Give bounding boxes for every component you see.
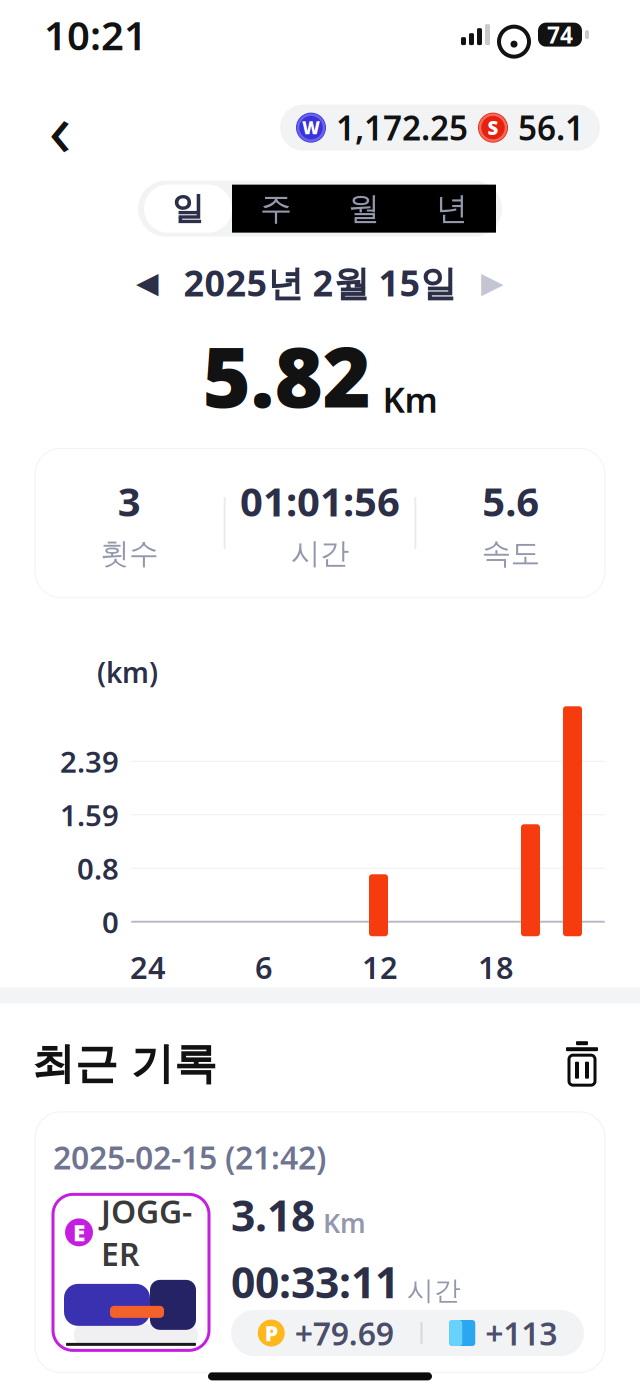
staticText: 2025년 2월 15일 bbox=[183, 259, 456, 306]
staticText: 속도 bbox=[482, 535, 540, 571]
staticText: E bbox=[73, 1217, 85, 1247]
staticText: 0.8 bbox=[77, 849, 119, 888]
button[interactable]: 2025-02-15 (21:42) bbox=[35, 1112, 605, 1372]
staticText: Km bbox=[323, 1205, 366, 1240]
staticText: (km) bbox=[97, 654, 158, 691]
staticText: 주 bbox=[260, 189, 292, 228]
staticText: 12 bbox=[362, 947, 398, 987]
button[interactable]: Wallet balance bbox=[280, 105, 600, 151]
staticText: 6 bbox=[255, 947, 273, 987]
button[interactable]: Back bbox=[32, 100, 88, 156]
staticText: ▶ bbox=[481, 266, 504, 299]
staticText: 일 bbox=[172, 189, 204, 228]
staticText: 3 bbox=[118, 474, 141, 527]
button[interactable]: 주 bbox=[232, 185, 320, 233]
staticText: 24 bbox=[130, 947, 166, 987]
staticText: 1.59 bbox=[60, 795, 119, 834]
staticText: 00:33:11 bbox=[231, 1253, 399, 1310]
staticText: 시간 bbox=[291, 535, 349, 571]
staticText: 월 bbox=[348, 189, 380, 228]
staticText: 3.18 bbox=[231, 1187, 315, 1243]
button[interactable]: Previous day bbox=[121, 259, 173, 307]
staticText: 횟수 bbox=[100, 535, 158, 571]
staticText: 2025-02-15 (21:42) bbox=[53, 1136, 326, 1178]
staticText: JOGGER bbox=[101, 1190, 192, 1275]
staticText: 10:21 bbox=[44, 8, 147, 61]
staticText: 74 bbox=[547, 20, 573, 50]
staticText: ‹ bbox=[48, 78, 71, 177]
staticText: 2.39 bbox=[60, 742, 119, 781]
staticText: P bbox=[265, 1319, 278, 1347]
staticText: 5.6 bbox=[482, 474, 539, 527]
staticText: +113 bbox=[485, 1312, 557, 1354]
staticText: W bbox=[302, 116, 320, 139]
button[interactable]: Next day bbox=[466, 259, 518, 307]
button[interactable]: 월 bbox=[320, 185, 408, 233]
staticText: +79.69 bbox=[295, 1312, 394, 1354]
staticText: 56.1 bbox=[518, 105, 584, 150]
staticText: 5.82 bbox=[202, 321, 370, 430]
button[interactable]: Delete records bbox=[556, 1038, 608, 1090]
staticText: 1,172.25 bbox=[336, 105, 468, 150]
staticText: ◀ bbox=[136, 266, 159, 299]
staticText: 01:01:56 bbox=[240, 474, 400, 527]
staticText: S bbox=[487, 115, 498, 140]
staticText: Km bbox=[382, 376, 437, 422]
staticText: 18 bbox=[478, 947, 514, 987]
button[interactable]: 일 bbox=[144, 185, 232, 233]
staticText: 시간 bbox=[407, 1274, 461, 1307]
staticText: 년 bbox=[436, 189, 468, 228]
button[interactable]: 년 bbox=[408, 185, 496, 233]
staticText: 0 bbox=[102, 902, 119, 941]
staticText: 최근 기록 bbox=[32, 1037, 217, 1090]
